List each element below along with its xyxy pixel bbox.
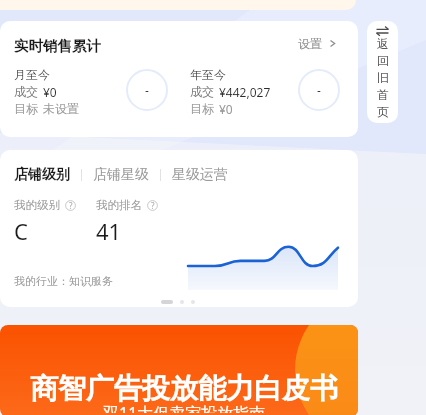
button[interactable]: 商智广告投放能力白皮书 (0, 325, 358, 415)
staticText: ¥0 (43, 84, 57, 100)
staticText: 设置 (298, 36, 322, 51)
button[interactable]: 店铺星级 (93, 166, 149, 184)
button[interactable]: 星级运营 (172, 166, 228, 184)
button[interactable]: 设置 (298, 36, 337, 51)
button[interactable]: 帮助 (65, 200, 76, 211)
staticText: 双11大促卖家投放指南 (103, 402, 266, 413)
button[interactable]: 店铺级别 (14, 166, 70, 184)
staticText: 成交 (190, 84, 214, 99)
staticText: - (317, 82, 321, 98)
staticText: 成交 (14, 84, 38, 99)
button[interactable]: 返回旧首页 (367, 21, 398, 123)
staticText: 商智广告投放能力白皮书 (30, 371, 338, 406)
staticText: 我的行业：知识服务 (14, 274, 113, 288)
button[interactable]: 帮助 (147, 200, 158, 211)
staticText: 目标 (190, 101, 214, 116)
staticText: ? (151, 200, 155, 211)
staticText: ¥442,027 (219, 84, 271, 100)
staticText: 未设置 (43, 101, 79, 116)
staticText: ¥0 (219, 101, 233, 117)
staticText: 返 回 旧 首 页 (377, 36, 389, 119)
staticText: 年至今 (190, 67, 226, 82)
staticText: 月至今 (14, 67, 50, 82)
staticText: 41 (96, 216, 122, 246)
staticText: C (14, 216, 28, 246)
staticText: 我的排名 (96, 198, 142, 212)
staticText: ? (69, 200, 73, 211)
staticText: 目标 (14, 101, 38, 116)
staticText: - (145, 82, 149, 98)
staticText: 实时销售累计 (14, 37, 101, 55)
staticText: 我的级别 (14, 198, 60, 212)
